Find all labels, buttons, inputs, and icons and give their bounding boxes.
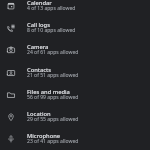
staticText: 24 of 61 apps allowed xyxy=(27,49,79,56)
staticText: Calendar xyxy=(27,0,52,7)
staticText: 4 of 13 apps allowed xyxy=(27,5,76,12)
staticText: Location xyxy=(27,110,51,118)
other: Microphone xyxy=(7,135,15,143)
button[interactable]: Microphone xyxy=(0,129,150,150)
button[interactable]: Files and media xyxy=(0,85,150,107)
button[interactable]: Calendar xyxy=(0,0,150,18)
other: Calendar xyxy=(7,2,15,10)
staticText: Camera xyxy=(27,43,49,51)
staticText: 21 of 51 apps allowed xyxy=(27,72,79,79)
button[interactable]: Camera xyxy=(0,40,150,62)
button[interactable]: Call logs xyxy=(0,18,150,40)
other: Location xyxy=(7,113,15,121)
other: Camera xyxy=(7,46,15,54)
other: Files and media xyxy=(7,91,15,99)
staticText: Files and media xyxy=(27,88,70,96)
staticText: Call logs xyxy=(27,21,50,29)
other: Call logs xyxy=(7,24,15,32)
staticText: 23 of 41 apps allowed xyxy=(27,138,79,145)
other: Contacts xyxy=(7,69,15,77)
staticText: Contacts xyxy=(27,66,52,74)
button[interactable]: Location xyxy=(0,107,150,129)
staticText: 29 of 55 apps allowed xyxy=(27,116,79,123)
staticText: Microphone xyxy=(27,132,61,140)
button[interactable]: Contacts xyxy=(0,63,150,85)
staticText: 56 of 99 apps allowed xyxy=(27,94,79,101)
staticText: 8 of 10 apps allowed xyxy=(27,27,76,34)
